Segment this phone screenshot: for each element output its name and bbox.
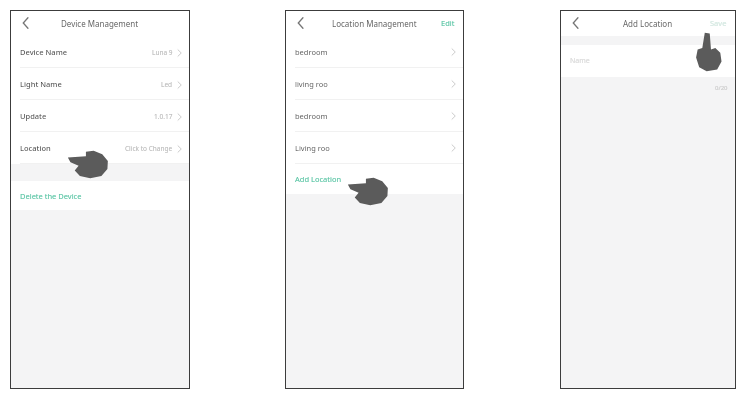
- staticText: Add Location: [623, 18, 673, 29]
- staticText: Luna 9: [152, 48, 173, 57]
- button[interactable]: Back: [565, 13, 585, 33]
- button[interactable]: bedroom: [285, 100, 464, 132]
- button[interactable]: Name: [560, 45, 736, 77]
- staticText: Delete the Device: [20, 191, 82, 201]
- button[interactable]: Delete the Device: [10, 181, 190, 210]
- staticText: Click to Change: [125, 144, 173, 153]
- staticText: bedroom: [295, 111, 328, 121]
- staticText: Location: [20, 143, 51, 153]
- button[interactable]: Edit: [439, 16, 457, 30]
- button[interactable]: Save: [708, 16, 729, 30]
- button[interactable]: Living roo: [285, 132, 464, 164]
- button[interactable]: Back: [290, 13, 310, 33]
- button[interactable]: Location: [10, 132, 190, 164]
- staticText: Add Location: [295, 174, 342, 184]
- button[interactable]: Add Location: [285, 164, 464, 194]
- staticText: Light Name: [20, 79, 62, 89]
- button[interactable]: Back: [15, 13, 35, 33]
- button[interactable]: living roo: [285, 68, 464, 100]
- staticText: Led: [161, 80, 173, 89]
- staticText: Name: [570, 56, 590, 66]
- staticText: living roo: [295, 79, 328, 89]
- staticText: Edit: [441, 18, 455, 28]
- staticText: Update: [20, 111, 47, 121]
- staticText: Device Name: [20, 47, 68, 57]
- staticText: 0/20: [715, 84, 728, 92]
- staticText: bedroom: [295, 47, 328, 57]
- staticText: 1.0.17: [154, 112, 173, 121]
- button[interactable]: Light Name: [10, 68, 190, 100]
- staticText: Living roo: [295, 143, 330, 153]
- button[interactable]: Update: [10, 100, 190, 132]
- staticText: Save: [710, 18, 727, 28]
- staticText: Location Management: [332, 18, 417, 29]
- staticText: Device Management: [61, 18, 139, 29]
- button[interactable]: bedroom: [285, 36, 464, 68]
- button[interactable]: Device Name: [10, 36, 190, 68]
